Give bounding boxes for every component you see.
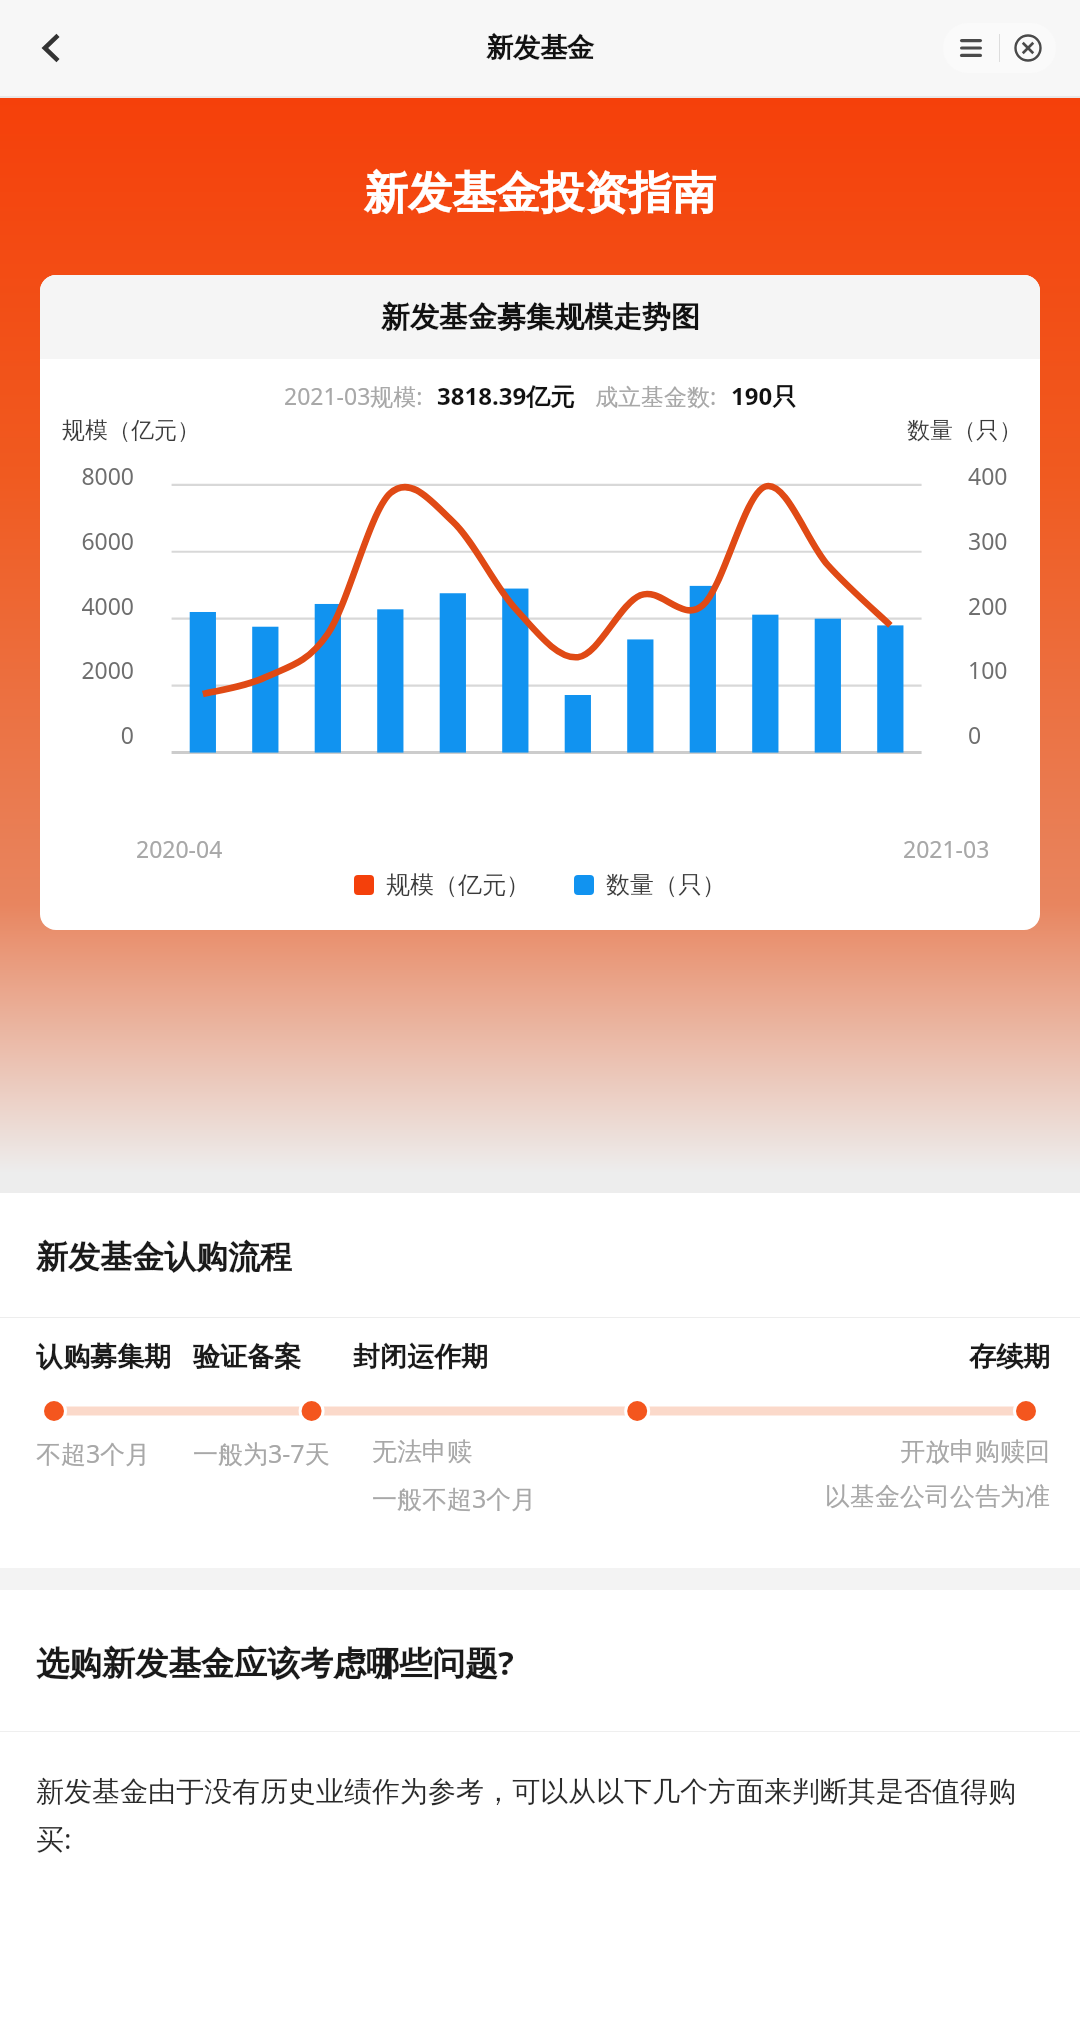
staticText: 新发基金由于没有历史业绩作为参考，可以从以下几个方面来判断其是否值得购买:: [36, 1774, 1046, 1857]
staticText: 200: [968, 590, 1030, 621]
staticText: 不超3个月: [36, 1436, 151, 1470]
staticText: 数量（只）: [606, 870, 726, 900]
staticText: 规模（亿元）: [386, 870, 530, 900]
staticText: 0: [968, 719, 1030, 750]
staticText: 存续期: [969, 1340, 1050, 1374]
staticText: 封闭运作期: [353, 1340, 488, 1374]
staticText: 300: [968, 525, 1030, 556]
staticText: 新发基金募集规模走势图: [381, 299, 700, 336]
button[interactable]: Menu: [943, 23, 999, 73]
staticText: 验证备案: [193, 1340, 301, 1374]
staticText: 无法申赎: [372, 1436, 472, 1467]
staticText: 新发基金投资指南: [364, 166, 716, 221]
staticText: 规模（亿元）: [62, 416, 200, 445]
staticText: 4000: [50, 590, 134, 621]
staticText: 一般不超3个月: [372, 1481, 537, 1515]
staticText: 2020-04: [136, 833, 223, 864]
staticText: 认购募集期: [36, 1340, 171, 1374]
staticText: 0: [50, 719, 134, 750]
staticText: 6000: [50, 525, 134, 556]
staticText: 2021-03: [903, 833, 990, 864]
staticText: 数量（只）: [907, 416, 1022, 445]
staticText: 8000: [50, 460, 134, 491]
staticText: 成立基金数:: [595, 380, 717, 411]
staticText: 以基金公司公告为准: [825, 1481, 1050, 1512]
staticText: 选购新发基金应该考虑哪些问题?: [36, 1640, 514, 1685]
staticText: 一般为3-7天: [193, 1436, 330, 1470]
staticText: 3818.39亿元: [437, 379, 575, 412]
staticText: 开放申购赎回: [900, 1436, 1050, 1467]
staticText: 新发基金认购流程: [36, 1237, 292, 1277]
button[interactable]: Close: [1000, 23, 1056, 73]
staticText: 新发基金: [486, 31, 594, 65]
staticText: 2000: [50, 654, 134, 685]
button[interactable]: Back: [24, 20, 80, 76]
staticText: 400: [968, 460, 1030, 491]
staticText: 190只: [731, 379, 797, 412]
staticText: 100: [968, 654, 1030, 685]
staticText: 2021-03规模:: [284, 380, 423, 411]
